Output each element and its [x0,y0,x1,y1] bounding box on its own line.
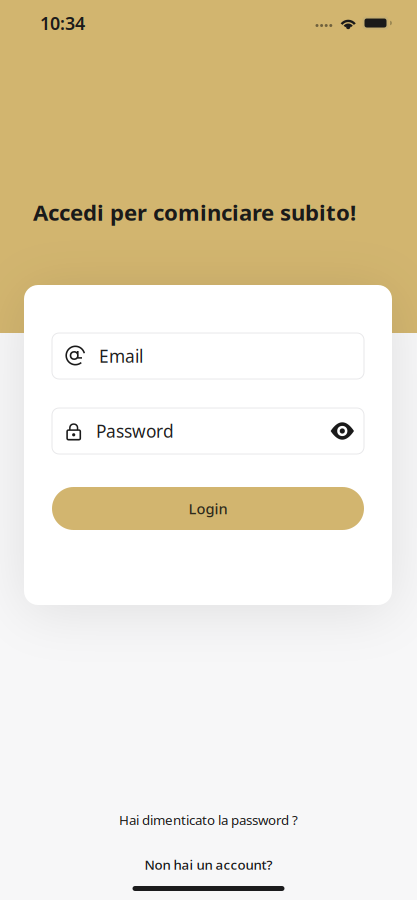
staticText: Non hai un account? [144,856,272,873]
button[interactable]: Non hai un account? [0,850,417,879]
staticText: Login [188,499,227,518]
button[interactable]: Show password [328,417,354,445]
staticText: Email [99,344,143,367]
staticText: 10:34 [40,8,85,37]
staticText: Hai dimenticato la password ? [119,811,298,829]
staticText: Password [96,419,174,442]
button[interactable]: Login [52,487,364,530]
staticText: Accedi per cominciare subito! [33,194,356,230]
button[interactable]: Hai dimenticato la password ? [0,805,417,835]
